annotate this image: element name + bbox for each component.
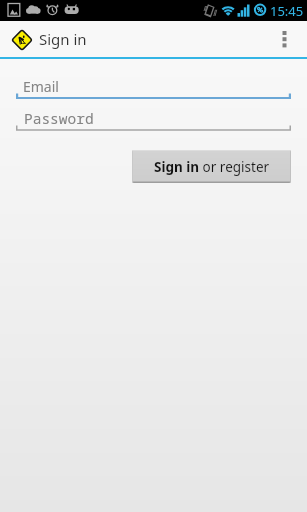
button[interactable]: Email [16,70,291,102]
staticText: Sign in or register [154,158,270,176]
button[interactable]: Password [16,102,291,134]
button[interactable]: Sign in or register [132,150,291,183]
staticText: 15:45 [270,2,304,20]
button[interactable]: More options [269,22,303,57]
staticText: Email [23,77,59,96]
staticText: Password [24,108,94,128]
staticText: Sign in [39,29,87,49]
button[interactable]: App icon [10,28,34,52]
